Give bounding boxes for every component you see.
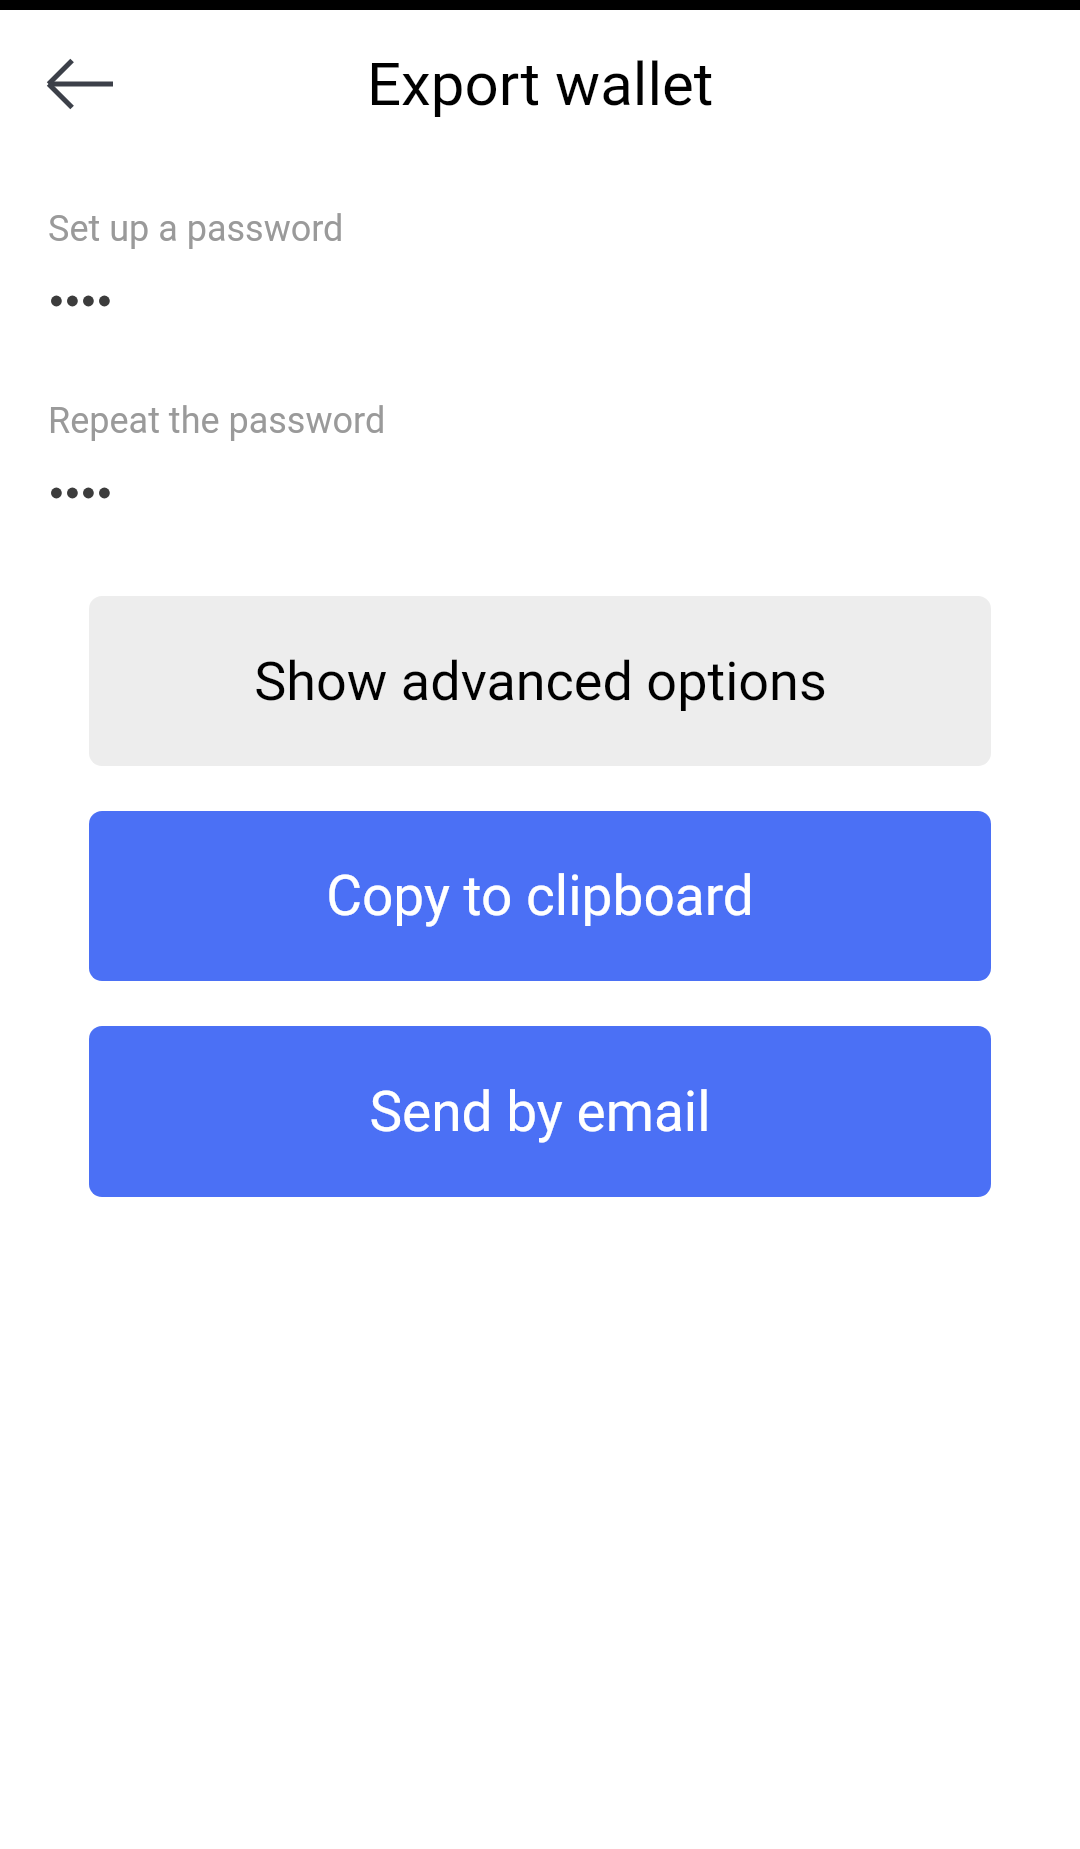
staticText: Copy to clipboard bbox=[326, 864, 754, 928]
staticText: Show advanced options bbox=[254, 650, 827, 713]
button[interactable]: Send by email bbox=[89, 1026, 991, 1197]
staticText: Send by email bbox=[369, 1080, 711, 1144]
button[interactable]: Show advanced options bbox=[89, 596, 991, 766]
button[interactable]: Back bbox=[25, 29, 135, 139]
staticText: Repeat the password bbox=[48, 400, 386, 442]
staticText: Set up a password bbox=[48, 208, 344, 250]
button[interactable]: Copy to clipboard bbox=[89, 811, 991, 981]
staticText: Export wallet bbox=[367, 49, 714, 119]
